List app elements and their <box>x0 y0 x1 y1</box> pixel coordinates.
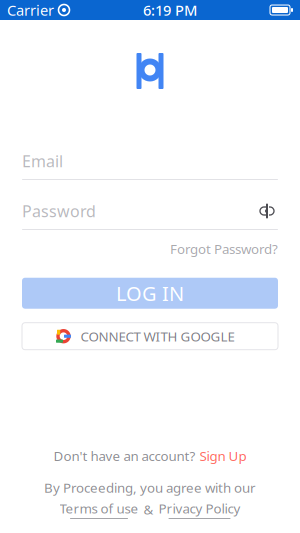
button[interactable]: Sign Up <box>199 447 246 465</box>
staticText: Email <box>22 150 63 172</box>
staticText: Carrier <box>7 0 54 20</box>
staticText: Terms of use <box>59 499 138 517</box>
staticText: Forgot Password? <box>170 240 278 258</box>
button[interactable]: CONNECT WITH GOOGLE <box>22 323 278 350</box>
staticText: 6:19 PM <box>143 0 197 20</box>
staticText: LOG IN <box>116 280 184 306</box>
staticText: By Proceeding, you agree with our <box>44 479 256 496</box>
button[interactable]: Show password <box>256 202 278 220</box>
button[interactable]: Forgot Password? <box>170 237 278 261</box>
staticText: Don't have an account? <box>53 447 195 465</box>
button[interactable]: Privacy Policy <box>158 499 240 519</box>
staticText: Password <box>22 200 96 222</box>
staticText: & <box>143 500 153 518</box>
staticText: Sign Up <box>199 447 246 465</box>
button[interactable]: Terms of use <box>59 499 138 519</box>
staticText: Privacy Policy <box>158 499 240 517</box>
staticText: CONNECT WITH GOOGLE <box>80 327 234 345</box>
button[interactable]: LOG IN <box>22 278 278 309</box>
